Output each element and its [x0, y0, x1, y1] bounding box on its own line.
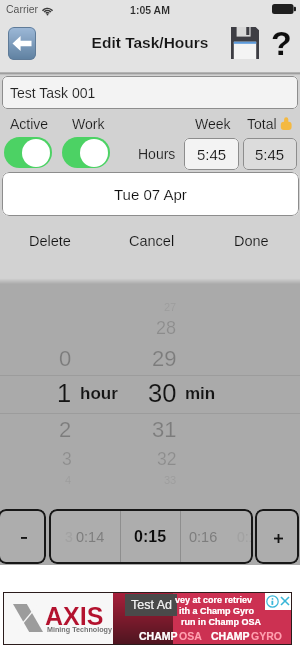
- staticText: 30: [148, 379, 177, 407]
- staticText: Edit Task/Hours: [0, 34, 300, 51]
- staticText: 3: [62, 449, 72, 469]
- staticText: Done: [234, 233, 269, 249]
- staticText: Delete: [29, 233, 71, 249]
- staticText: 0:16: [189, 529, 218, 545]
- button[interactable]: Help: [266, 24, 296, 62]
- staticText: AXIS: [45, 602, 104, 630]
- staticText: Carrier: [6, 3, 39, 15]
- button[interactable]: Save: [231, 27, 259, 59]
- button[interactable]: 0:14: [61, 509, 120, 564]
- button[interactable]: 0:16: [174, 509, 233, 564]
- staticText: Work: [72, 116, 105, 132]
- staticText: 0:1: [237, 529, 253, 545]
- staticText: Active: [10, 116, 49, 132]
- staticText: hour: [80, 384, 118, 403]
- staticText: Mining Technology: [47, 625, 112, 633]
- staticText: 31: [152, 417, 177, 442]
- button[interactable]: Decrease: [0, 509, 46, 564]
- staticText: Test Ad: [131, 598, 172, 612]
- staticText: 32: [157, 449, 177, 469]
- staticText: 4: [65, 474, 72, 486]
- staticText: 5:45: [255, 146, 285, 163]
- staticText: Tue 07 Apr: [114, 186, 187, 203]
- staticText: 28: [156, 318, 177, 338]
- staticText: Week: [195, 116, 231, 132]
- staticText: ?: [271, 24, 292, 62]
- staticText: 29: [152, 346, 177, 371]
- staticText: 5:45: [197, 146, 227, 163]
- staticText: 0: [59, 346, 72, 371]
- button[interactable]: 5:45: [243, 138, 297, 170]
- staticText: 3: [65, 529, 73, 545]
- button[interactable]: Test Task 001: [2, 76, 298, 109]
- button[interactable]: Tue 07 Apr: [2, 172, 299, 216]
- button[interactable]: Advertisement: [3, 592, 292, 645]
- staticText: 33: [164, 474, 177, 486]
- staticText: OSA: [179, 630, 202, 642]
- staticText: 2: [59, 417, 72, 442]
- button[interactable]: Cancel: [118, 232, 186, 250]
- button[interactable]: Delete: [16, 232, 84, 250]
- staticText: Hours: [138, 146, 176, 162]
- button[interactable]: Toggle: [4, 137, 52, 168]
- staticText: Cancel: [129, 233, 175, 249]
- staticText: 27: [164, 301, 177, 313]
- button[interactable]: 0:15: [121, 509, 180, 564]
- staticText: ith a Champ Gyro: [179, 606, 255, 616]
- button[interactable]: 5:45: [184, 138, 239, 170]
- staticText: run in Champ OSA: [181, 617, 262, 627]
- staticText: 1:05 AM: [0, 4, 300, 16]
- staticText: vey at core retriev: [175, 595, 253, 605]
- staticText: CHAMP: [211, 630, 250, 642]
- staticText: 0:14: [76, 529, 105, 545]
- staticText: CHAMP: [139, 630, 178, 642]
- staticText: 1: [57, 379, 72, 407]
- button[interactable]: Increase: [255, 509, 299, 564]
- staticText: GYRO: [251, 630, 282, 642]
- staticText: min: [185, 384, 216, 403]
- staticText: Test Task 001: [10, 85, 96, 101]
- button[interactable]: Back: [8, 27, 36, 60]
- button[interactable]: Done: [217, 232, 285, 250]
- staticText: 0:15: [134, 528, 167, 546]
- staticText: Total: [247, 116, 277, 132]
- button[interactable]: Toggle: [62, 137, 110, 168]
